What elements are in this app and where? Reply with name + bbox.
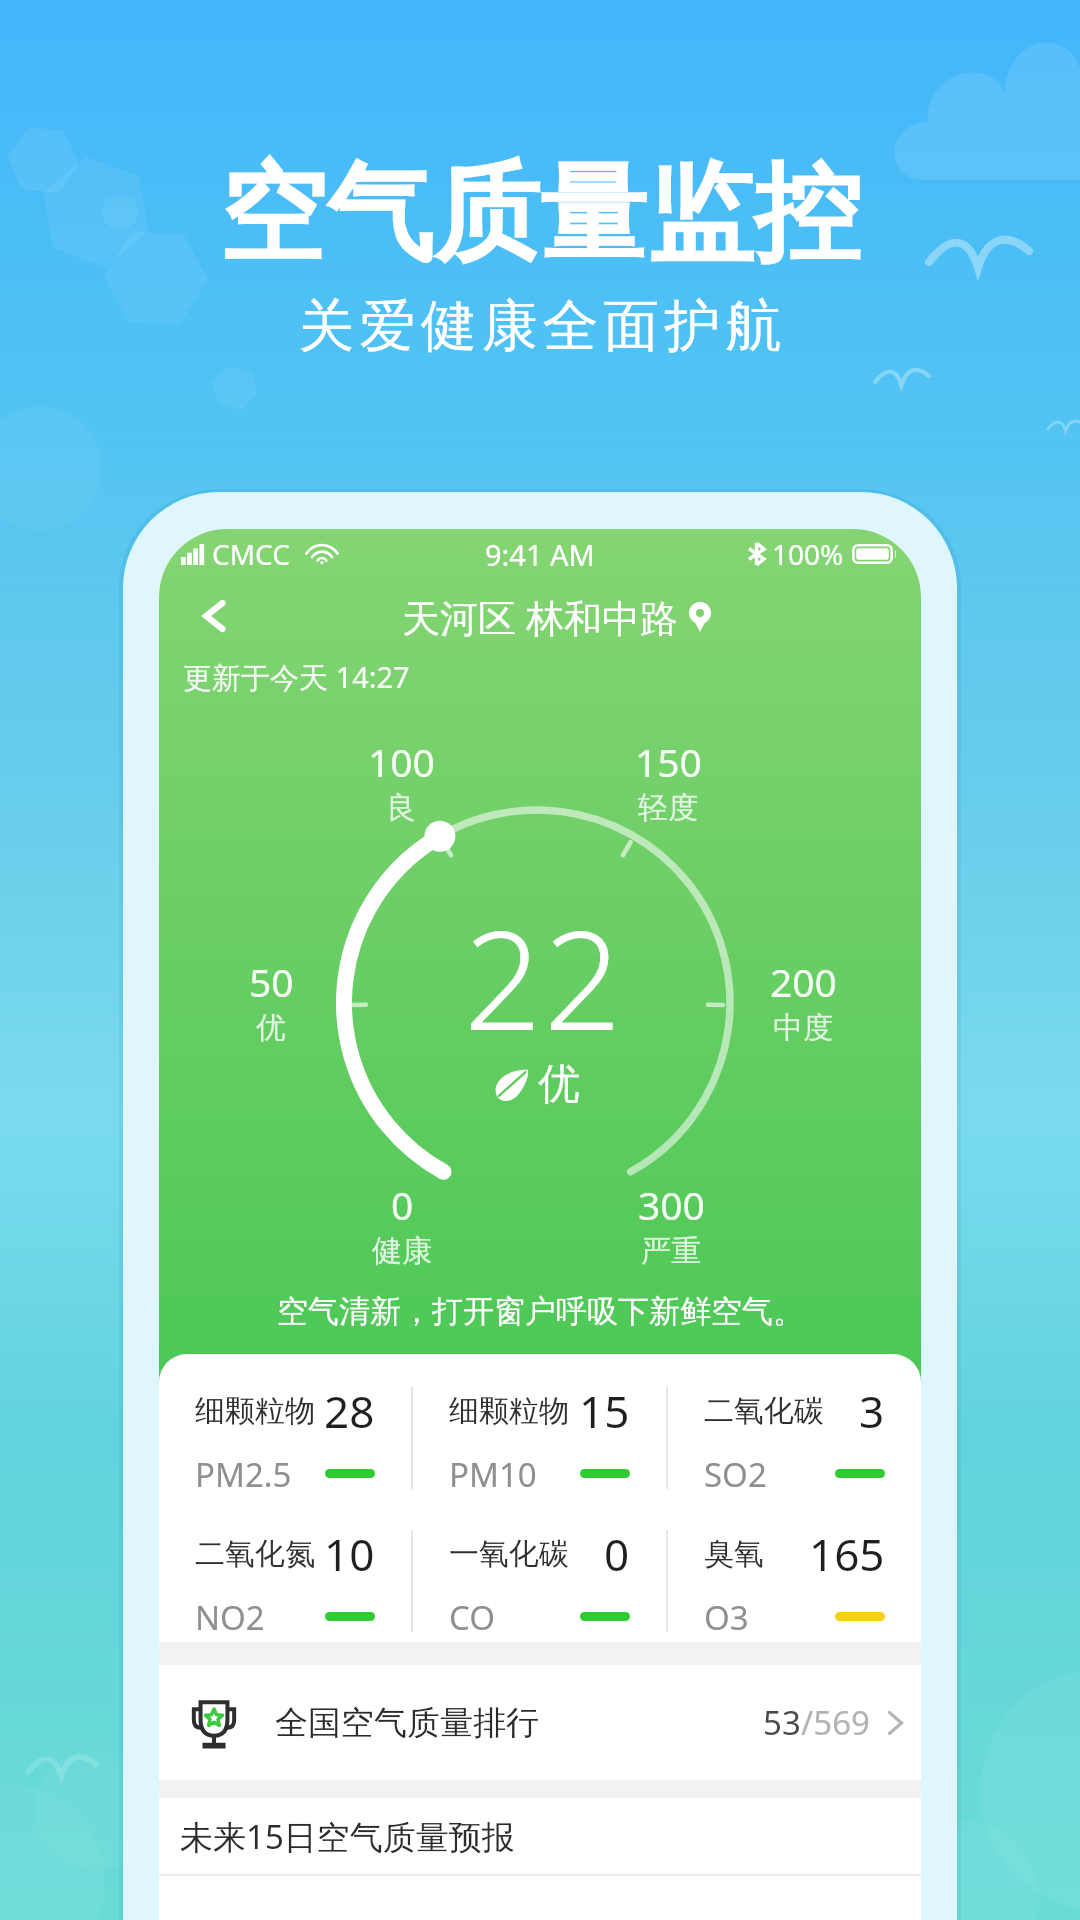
button[interactable]: Back (177, 579, 251, 653)
staticText: 良 (386, 789, 416, 827)
staticText: 28 (324, 1381, 375, 1441)
staticText: SO2 (704, 1452, 767, 1495)
staticText: 二氧化氮 (195, 1535, 315, 1573)
staticText: PM10 (449, 1452, 537, 1495)
staticText: 100 (368, 735, 435, 788)
staticText: 轻度 (638, 789, 698, 827)
staticText: 细颗粒物 (449, 1392, 569, 1430)
staticText: 细颗粒物 (195, 1392, 315, 1430)
staticText: 165 (809, 1524, 885, 1584)
staticText: 200 (770, 955, 837, 1008)
staticText: 22 (464, 885, 624, 1070)
staticText: 一氧化碳 (449, 1535, 569, 1573)
staticText: 0 (604, 1524, 630, 1584)
staticText: 50 (249, 955, 294, 1008)
staticText: 10 (324, 1524, 375, 1584)
staticText: 未来15日空气质量预报 (180, 1814, 515, 1859)
staticText: PM2.5 (195, 1452, 292, 1495)
staticText: NO2 (195, 1595, 265, 1638)
staticText: 关爱健康全面护航 (296, 291, 784, 362)
staticText: 全国空气质量排行 (275, 1702, 539, 1744)
staticText: 300 (638, 1178, 705, 1231)
staticText: 臭氧 (704, 1535, 764, 1573)
button[interactable]: 全国空气质量排行 (159, 1665, 921, 1780)
staticText: 3 (859, 1381, 885, 1441)
staticText: O3 (704, 1595, 749, 1638)
staticText: 9:41 AM (485, 535, 595, 574)
staticText: 53 (763, 1700, 801, 1745)
staticText: 空气质量监控 (219, 147, 861, 282)
staticText: 空气清新，打开窗户呼吸下新鲜空气。 (277, 1292, 804, 1331)
staticText: 0 (391, 1178, 414, 1231)
staticText: 优 (256, 1009, 286, 1047)
staticText: 更新于今天 14:27 (183, 657, 410, 697)
staticText: CO (449, 1595, 495, 1638)
staticText: 天河区 林和中路 (402, 591, 678, 643)
staticText: 健康 (372, 1232, 432, 1270)
staticText: 150 (635, 735, 702, 788)
staticText: 优 (538, 1058, 580, 1111)
staticText: 15 (579, 1381, 630, 1441)
staticText: 严重 (641, 1232, 701, 1270)
staticText: /569 (801, 1700, 870, 1745)
staticText: 100% (772, 535, 844, 573)
staticText: 二氧化碳 (704, 1392, 824, 1430)
staticText: 中度 (773, 1009, 833, 1047)
staticText: CMCC (212, 535, 290, 573)
